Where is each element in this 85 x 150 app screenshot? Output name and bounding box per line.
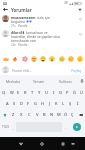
staticText: hazirdilar, elinde ve yapilan olsa xyxy=(11,34,60,38)
button[interactable]: dilar.s94 xyxy=(0,29,85,52)
staticText: W xyxy=(10,90,14,95)
staticText: F xyxy=(27,101,30,106)
button[interactable]: Filter xyxy=(74,6,85,13)
staticText: Y xyxy=(38,90,41,95)
button[interactable]: Y xyxy=(36,87,43,98)
staticText: Q xyxy=(2,90,6,95)
staticText: 21s xyxy=(11,24,16,28)
button[interactable]: Backspace xyxy=(76,109,85,120)
button[interactable]: Like xyxy=(76,30,84,38)
button[interactable]: muazzamsxxm xyxy=(0,13,85,29)
button[interactable]: Kullanıcı xyxy=(52,75,78,87)
button[interactable]: Voice input xyxy=(78,75,85,87)
button[interactable]: , xyxy=(11,120,16,134)
button[interactable]: F xyxy=(25,98,32,109)
button[interactable]: Emoji xyxy=(47,54,56,63)
staticText: Ğ xyxy=(73,90,76,95)
button[interactable]: Shift xyxy=(0,109,9,120)
button[interactable]: T xyxy=(29,87,36,98)
button[interactable]: K xyxy=(53,98,60,109)
button[interactable]: C xyxy=(25,109,33,120)
staticText: konushsun ve xyxy=(26,30,48,34)
staticText: J xyxy=(49,101,51,106)
button[interactable]: Back xyxy=(0,6,11,13)
staticText: Merhaba xyxy=(6,79,20,83)
button[interactable]: Recents xyxy=(59,140,67,148)
button[interactable]: ?123 xyxy=(0,120,11,134)
staticText: Tamam xyxy=(33,79,45,83)
button[interactable]: V xyxy=(33,109,41,120)
staticText: I xyxy=(53,90,55,95)
staticText: tonushoottı csm xyxy=(11,38,37,42)
button[interactable]: B xyxy=(41,109,48,120)
staticText: K xyxy=(55,101,58,106)
staticText: P xyxy=(66,90,69,95)
button[interactable]: M xyxy=(55,109,62,120)
button[interactable]: A xyxy=(4,98,11,109)
button[interactable]: Home xyxy=(38,140,46,148)
button[interactable]: Ş xyxy=(67,98,74,109)
staticText: Yorum ekle... xyxy=(12,68,33,72)
button[interactable]: Ö xyxy=(62,109,69,120)
button[interactable]: Z xyxy=(9,109,17,120)
button[interactable]: S xyxy=(11,98,18,109)
button[interactable]: Emoji xyxy=(38,54,47,63)
staticText: Ö xyxy=(64,112,68,117)
button[interactable]: Emoji xyxy=(75,54,84,63)
button[interactable]: Back xyxy=(17,140,25,148)
staticText: boğulma xyxy=(11,19,25,23)
button[interactable]: Like xyxy=(76,15,84,23)
staticText: İ xyxy=(77,101,79,106)
staticText: L xyxy=(62,101,65,106)
button[interactable]: E xyxy=(15,87,22,98)
staticText: B xyxy=(43,112,46,117)
staticText: S xyxy=(13,101,16,106)
button[interactable]: Paylaş xyxy=(70,67,83,73)
staticText: A xyxy=(6,101,9,106)
button[interactable]: Emoji xyxy=(1,54,10,63)
button[interactable]: Hide keyboard xyxy=(69,140,77,148)
staticText: Yanıtla xyxy=(18,43,28,47)
staticText: Ç xyxy=(71,112,74,117)
staticText: Yanıtla xyxy=(18,24,28,28)
button[interactable]: Emoji xyxy=(10,54,19,63)
button[interactable]: D xyxy=(18,98,25,109)
button[interactable]: Emoji xyxy=(29,54,38,63)
button[interactable]: İ xyxy=(74,98,81,109)
staticText: N xyxy=(50,112,54,117)
button[interactable]: Emoji xyxy=(20,54,29,63)
staticText: V xyxy=(36,112,39,117)
staticText: , xyxy=(13,125,14,130)
staticText: O xyxy=(59,90,63,95)
button[interactable]: H xyxy=(39,98,46,109)
button[interactable]: Ç xyxy=(69,109,76,120)
button[interactable]: X xyxy=(17,109,25,120)
button[interactable]: Ü xyxy=(78,87,85,98)
button[interactable]: W xyxy=(8,87,15,98)
staticText: Paylaş xyxy=(71,68,82,72)
staticText: M xyxy=(57,112,61,117)
staticText: H xyxy=(41,101,44,106)
button[interactable]: Emoji xyxy=(57,54,66,63)
button[interactable]: J xyxy=(46,98,53,109)
button[interactable]: L xyxy=(60,98,67,109)
button[interactable]: U xyxy=(43,87,50,98)
button[interactable]: G xyxy=(32,98,39,109)
button[interactable]: N xyxy=(48,109,55,120)
button[interactable]: Q xyxy=(0,87,8,98)
staticText: 38 xyxy=(64,1,68,5)
staticText: E xyxy=(17,90,20,95)
button[interactable]: R xyxy=(22,87,29,98)
button[interactable]: Ğ xyxy=(71,87,78,98)
button[interactable]: I xyxy=(50,87,57,98)
button[interactable]: Merhaba xyxy=(0,75,26,87)
button[interactable]: Tamam xyxy=(26,75,52,87)
button[interactable]: P xyxy=(64,87,71,98)
staticText: Yorumlar xyxy=(11,7,32,13)
staticText: D xyxy=(20,101,23,106)
button[interactable]: Send xyxy=(68,120,85,134)
button[interactable]: O xyxy=(57,87,64,98)
button[interactable]: Emoji xyxy=(66,54,75,63)
